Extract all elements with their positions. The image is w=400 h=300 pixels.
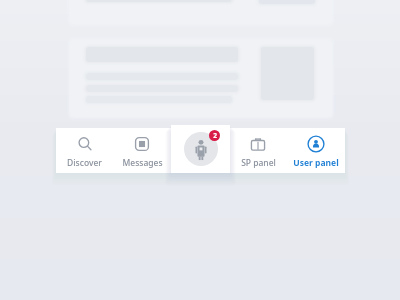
staticText: Discover [67,157,102,169]
staticText: SP panel [241,157,276,169]
staticText: Messages [122,157,163,169]
staticText: 2 [213,131,217,140]
button[interactable]: User panel [287,128,345,173]
staticText: User panel [293,157,339,169]
button[interactable]: Messages [113,128,171,173]
button[interactable]: Account [171,125,230,173]
button[interactable]: Discover [56,128,113,173]
button[interactable]: SP panel [229,128,287,173]
